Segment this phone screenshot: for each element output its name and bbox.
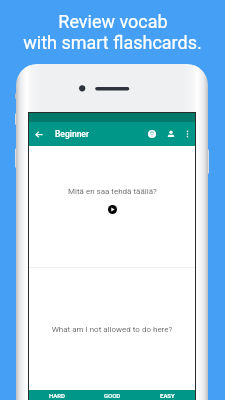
button[interactable]: Account bbox=[161, 122, 180, 146]
button[interactable]: EASY bbox=[140, 390, 195, 400]
button[interactable]: GOOD bbox=[85, 390, 140, 400]
staticText: What am I not allowed to do here? bbox=[29, 325, 195, 334]
button[interactable]: HARD bbox=[29, 390, 85, 400]
staticText: HARD bbox=[49, 392, 65, 399]
staticText: Mitä en saa tehdä täällä? bbox=[68, 187, 157, 196]
staticText: GOOD bbox=[104, 392, 121, 399]
staticText: with smart flashcards. bbox=[23, 32, 202, 53]
button[interactable]: Play pronunciation bbox=[108, 205, 117, 214]
staticText: Review vocab bbox=[58, 11, 168, 32]
staticText: Beginner bbox=[55, 129, 89, 139]
button[interactable]: Navigate up bbox=[29, 122, 49, 146]
staticText: EASY bbox=[160, 392, 175, 399]
button[interactable]: Help bbox=[142, 122, 161, 146]
button[interactable]: More options bbox=[180, 122, 195, 146]
